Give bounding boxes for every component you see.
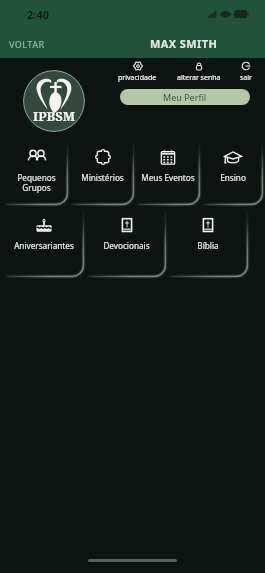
button[interactable]: Privacidade [118, 61, 157, 83]
button[interactable]: Meus Eventos [135, 138, 201, 206]
button[interactable]: Sair [240, 61, 252, 83]
staticText: VOLTAR [9, 38, 45, 50]
staticText: alterar senha [177, 73, 221, 83]
staticText: Ministérios [81, 172, 124, 183]
staticText: Bíblia [197, 240, 219, 251]
button[interactable]: Alterar senha [177, 61, 221, 83]
button[interactable]: Aniversariantes [3, 206, 85, 278]
staticText: Ensino [220, 172, 246, 183]
button[interactable]: Ensino [201, 138, 264, 206]
staticText: Pequenos Grupos [17, 172, 56, 194]
staticText: Aniversariantes [14, 240, 74, 251]
staticText: IPBSM [33, 107, 76, 125]
staticText: sair [240, 73, 252, 83]
staticText: Meus Eventos [141, 172, 195, 183]
button[interactable]: Ministérios [69, 138, 135, 206]
staticText: privacidade [118, 73, 157, 83]
button[interactable]: Meu Perfil [120, 89, 250, 105]
staticText: 2:40 [27, 7, 49, 22]
staticText: Meu Perfil [163, 91, 207, 103]
button[interactable]: Bíblia [167, 206, 249, 278]
staticText: Devocionais [103, 240, 150, 251]
other: Sair [241, 61, 251, 71]
other: Alterar senha [194, 61, 204, 71]
staticText: MAX SMITH [150, 36, 218, 51]
other: Privacidade [133, 61, 143, 71]
button[interactable]: Pequenos Grupos [3, 138, 69, 206]
button[interactable]: VOLTAR [9, 38, 45, 50]
button[interactable]: Devocionais [85, 206, 167, 278]
